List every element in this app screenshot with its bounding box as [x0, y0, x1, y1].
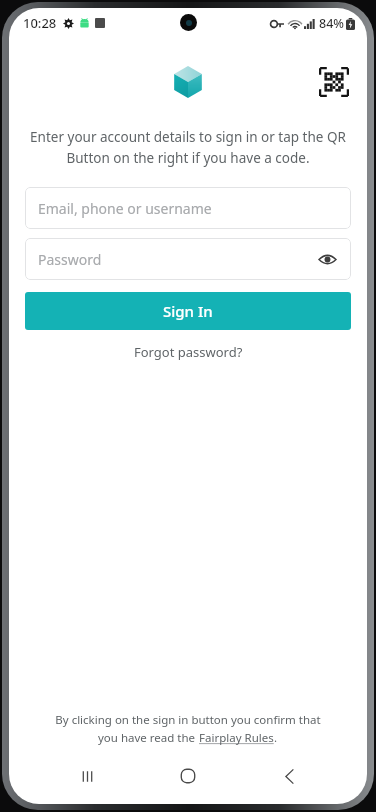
staticText: By clicking on the sign in button you co…	[55, 712, 321, 728]
staticText: 84%	[319, 15, 344, 32]
button[interactable]: Forgot password?	[9, 343, 367, 361]
button[interactable]	[163, 57, 213, 107]
staticText: 10:28	[23, 14, 57, 32]
staticText: Forgot password?	[134, 343, 243, 361]
staticText: Fairplay Rules	[199, 730, 274, 746]
staticText: Password	[38, 250, 102, 269]
button[interactable]: Scan QR code	[317, 65, 351, 99]
button[interactable]: Email, phone or username	[25, 187, 351, 229]
button[interactable]: Back	[266, 756, 314, 796]
staticText: Email, phone or username	[38, 199, 212, 218]
staticText: you have read the	[98, 730, 199, 746]
button[interactable]: Home	[164, 756, 212, 796]
staticText: Enter your account details to sign in or…	[27, 128, 349, 167]
button[interactable]: Sign In	[25, 292, 351, 330]
button[interactable]: Password	[25, 238, 351, 280]
button[interactable]: Recent apps	[63, 756, 111, 796]
button[interactable]: Fairplay Rules	[199, 730, 274, 746]
staticText: .	[274, 730, 278, 746]
button[interactable]: Show password	[316, 248, 338, 270]
staticText: Sign In	[163, 301, 213, 321]
